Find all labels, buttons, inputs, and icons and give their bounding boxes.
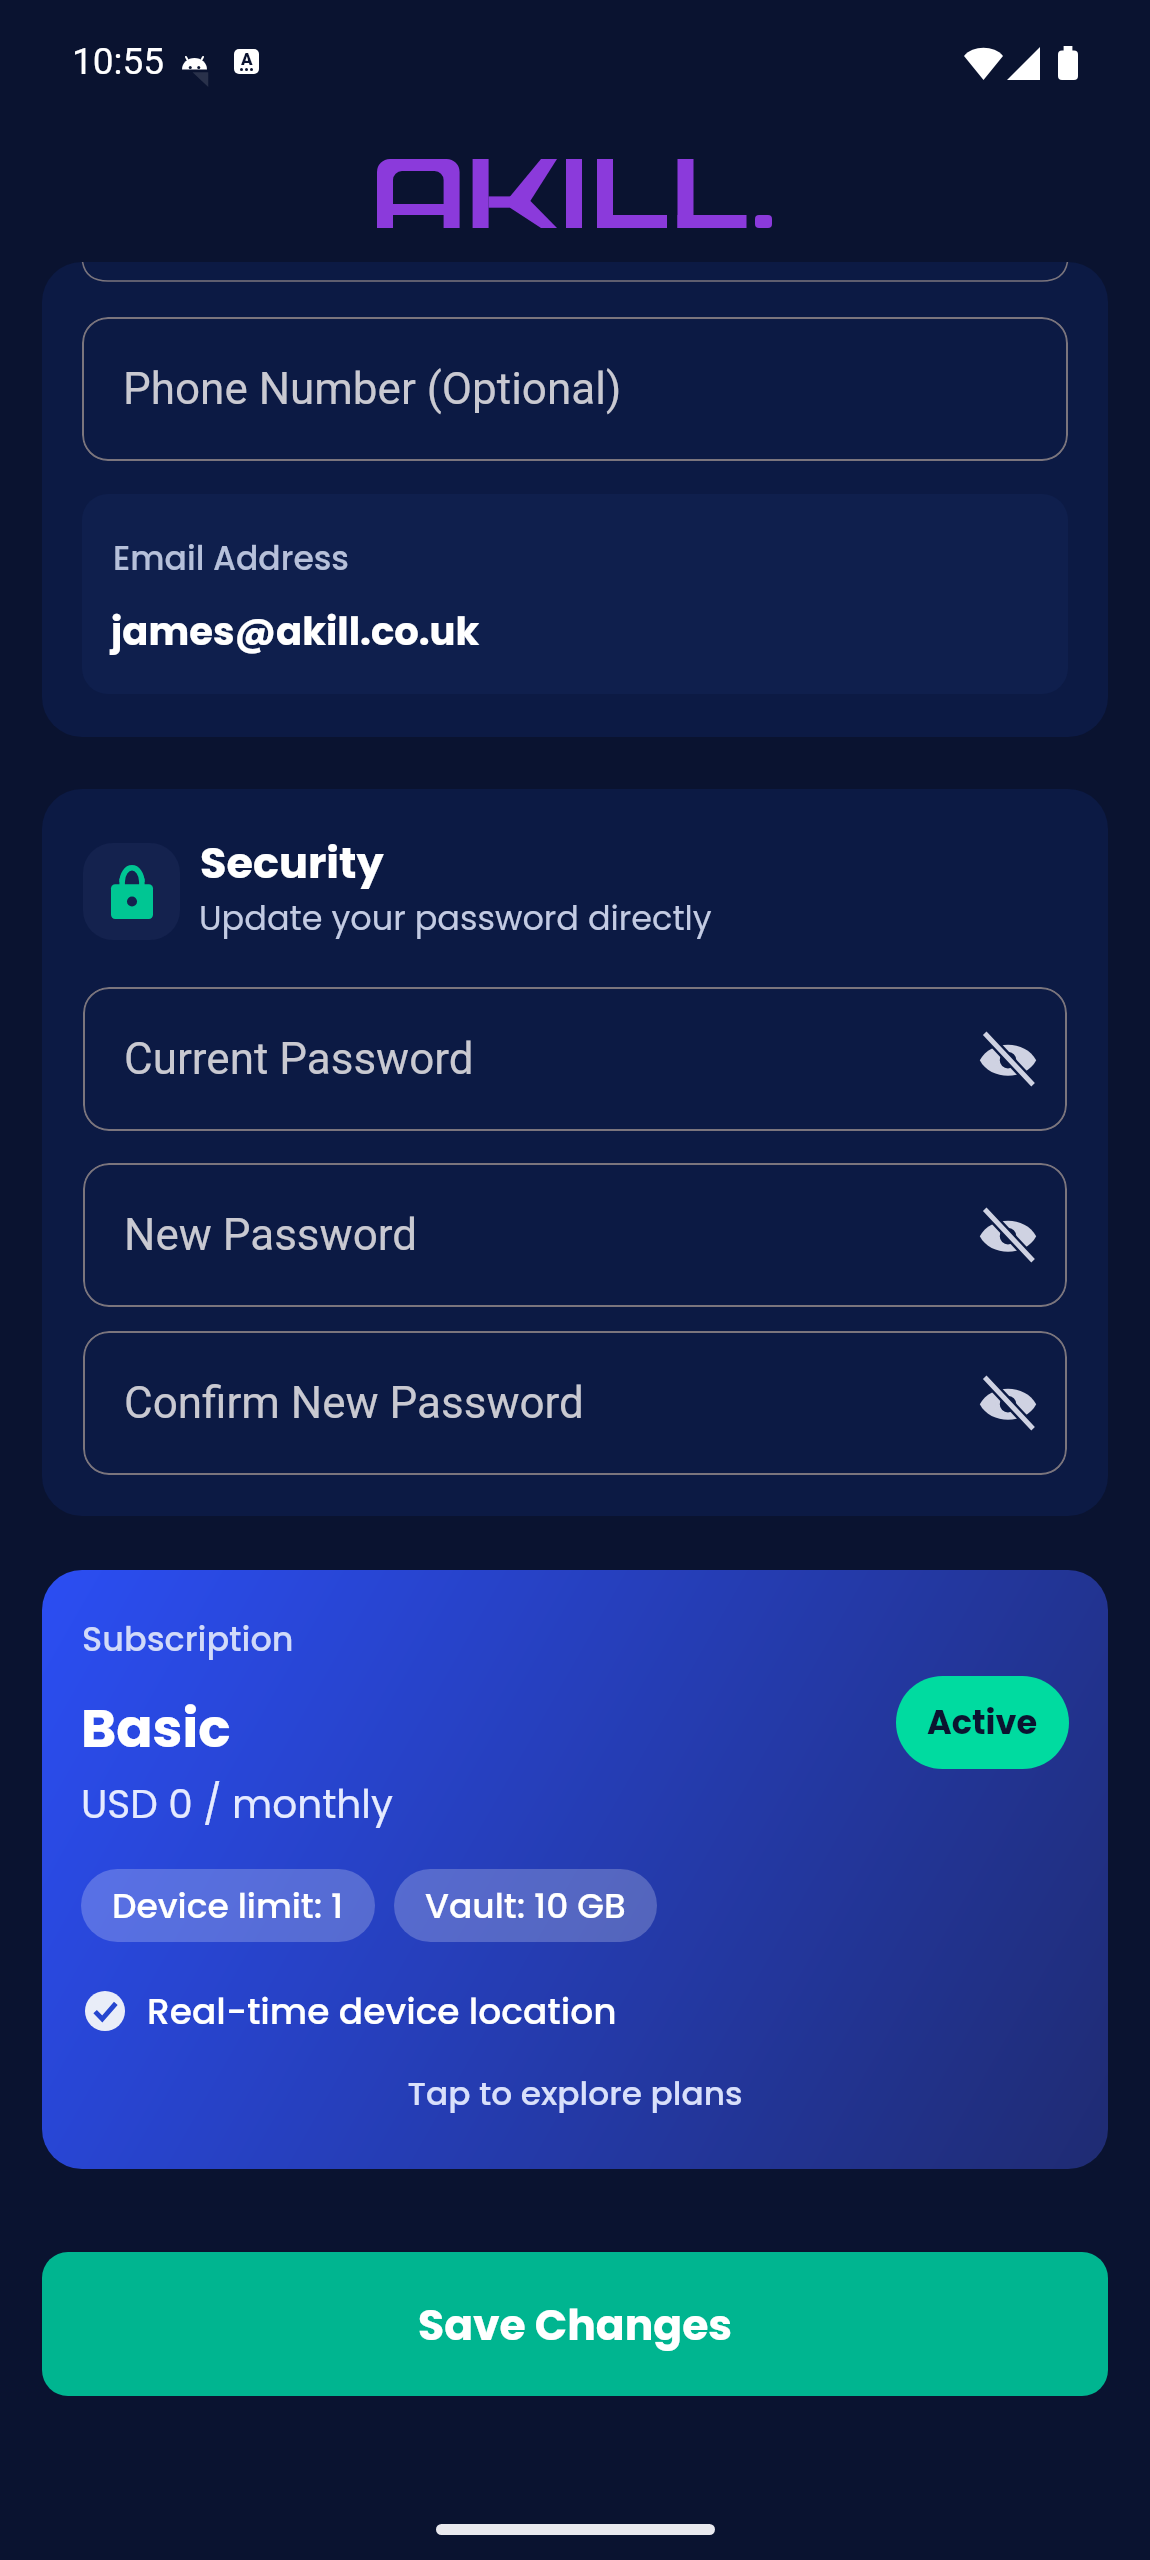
staticText: Confirm New Password: [124, 1377, 584, 1429]
button[interactable]: Active: [896, 1676, 1069, 1769]
staticText: Security: [200, 833, 384, 893]
staticText: USD 0 / monthly: [81, 1777, 393, 1832]
staticText: A: [241, 49, 253, 69]
staticText: New Password: [124, 1209, 418, 1261]
button[interactable]: Subscription: [42, 1570, 1108, 2169]
staticText: Basic: [81, 1691, 231, 1766]
button[interactable]: Phone Number (Optional): [82, 317, 1068, 461]
staticText: Save Changes: [418, 2295, 733, 2354]
staticText: Real-time device location: [147, 1986, 617, 2036]
button[interactable]: Device limit: 1: [81, 1869, 375, 1942]
button[interactable]: Confirm New Password: [83, 1331, 1067, 1475]
button[interactable]: Email Address: [82, 494, 1068, 694]
staticText: Active: [927, 1699, 1038, 1746]
staticText: james@akill.co.uk: [111, 605, 480, 659]
button[interactable]: Vault: 10 GB: [394, 1869, 657, 1942]
staticText: Current Password: [124, 1033, 474, 1085]
staticText: Phone Number (Optional): [123, 363, 622, 415]
staticText: Update your password directly: [199, 895, 712, 942]
button[interactable]: Show password: [970, 1021, 1046, 1097]
button[interactable]: New Password: [83, 1163, 1067, 1307]
button[interactable]: Show password: [970, 1365, 1046, 1441]
staticText: Subscription: [82, 1616, 294, 1663]
staticText: Tap to explore plans: [42, 2071, 1108, 2117]
staticText: Device limit: 1: [112, 1882, 344, 1930]
staticText: Vault: 10 GB: [425, 1882, 626, 1930]
staticText: 10:55: [72, 40, 165, 83]
staticText: Email Address: [113, 535, 349, 581]
button[interactable]: Current Password: [83, 987, 1067, 1131]
button[interactable]: Save Changes: [42, 2252, 1108, 2396]
button[interactable]: Show password: [970, 1197, 1046, 1273]
